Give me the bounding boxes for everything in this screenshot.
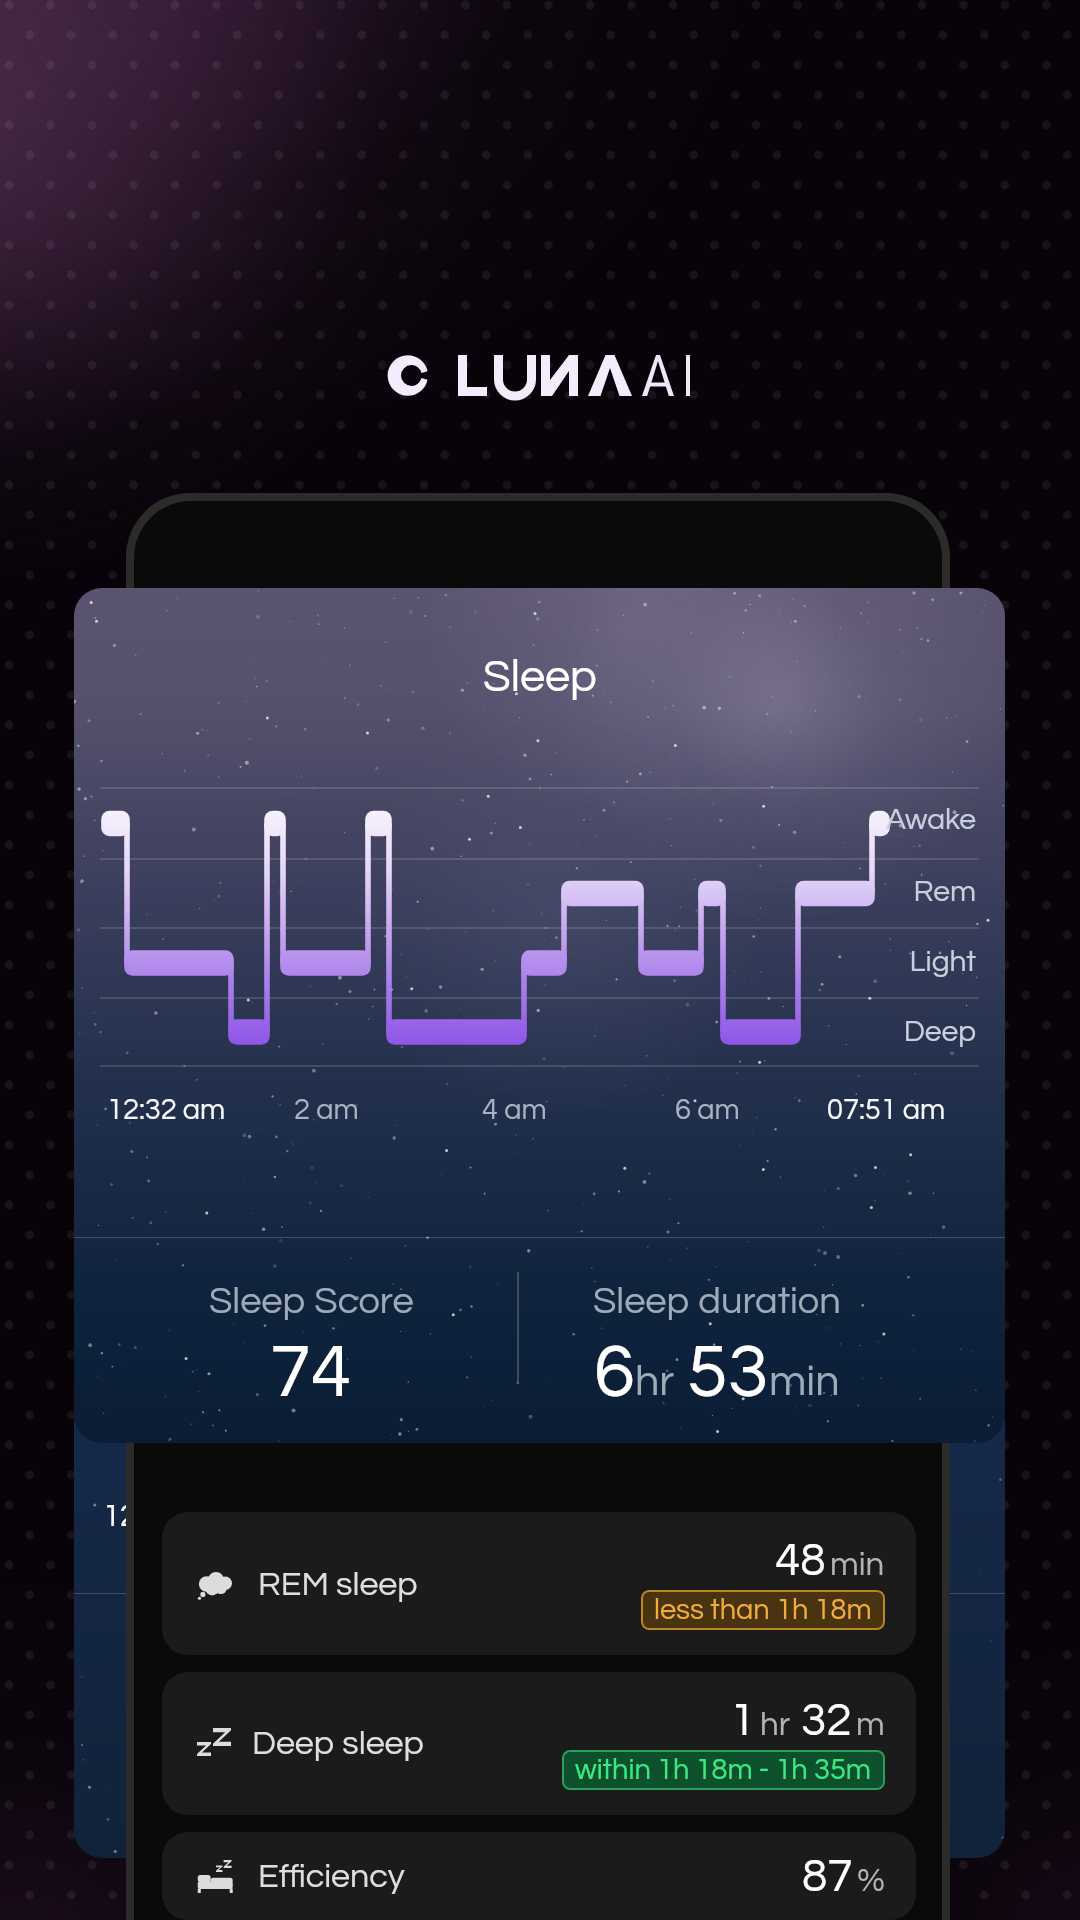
staticText: Sleep [483, 654, 597, 700]
staticText: Sleep Score [209, 1282, 414, 1321]
staticText: 4 am [482, 1095, 547, 1125]
staticText: 74 [270, 1335, 352, 1411]
staticText: less than 1h 18m [654, 1595, 872, 1625]
button[interactable]: Efficiency [162, 1832, 916, 1920]
staticText: Deep sleep [252, 1726, 424, 1761]
staticText: Sleep duration [593, 1282, 841, 1321]
button[interactable]: REM sleep [162, 1512, 916, 1655]
staticText: min [769, 1360, 840, 1404]
button[interactable]: Sleep [74, 588, 1005, 1443]
staticText: m [856, 1708, 885, 1742]
staticText: Light [674, 946, 976, 977]
staticText: 1 [730, 1697, 756, 1744]
staticText: within 1h 18m - 1h 35m [575, 1755, 872, 1785]
other: REM sleep [197, 1565, 235, 1603]
staticText: 6 am [675, 1095, 740, 1125]
staticText: 53 [687, 1335, 769, 1411]
staticText: 48 [775, 1537, 826, 1584]
staticText: REM sleep [258, 1567, 418, 1602]
button[interactable]: Deep sleep [162, 1672, 916, 1815]
staticText: hr [760, 1708, 791, 1742]
staticText: Efficiency [258, 1859, 405, 1894]
staticText: 12:32 am [103, 1501, 230, 1533]
staticText: % [857, 1864, 885, 1898]
button[interactable]: Luna AI [383, 349, 703, 409]
staticText: Awake [674, 804, 976, 835]
staticText: 87 [802, 1853, 853, 1900]
staticText: 12:32 am [107, 1095, 226, 1125]
staticText: min [830, 1548, 885, 1582]
staticText: hr [635, 1360, 675, 1404]
staticText: 32 [801, 1697, 852, 1744]
staticText: Deep [674, 1016, 976, 1047]
staticText: 6 [594, 1335, 635, 1411]
staticText: Rem [674, 876, 976, 907]
staticText: 07:51 am [824, 1501, 951, 1533]
other: Deep sleep [197, 1728, 229, 1760]
other: Efficiency [197, 1860, 235, 1894]
staticText: 07:51 am [827, 1095, 946, 1125]
staticText: 2 am [294, 1095, 359, 1125]
